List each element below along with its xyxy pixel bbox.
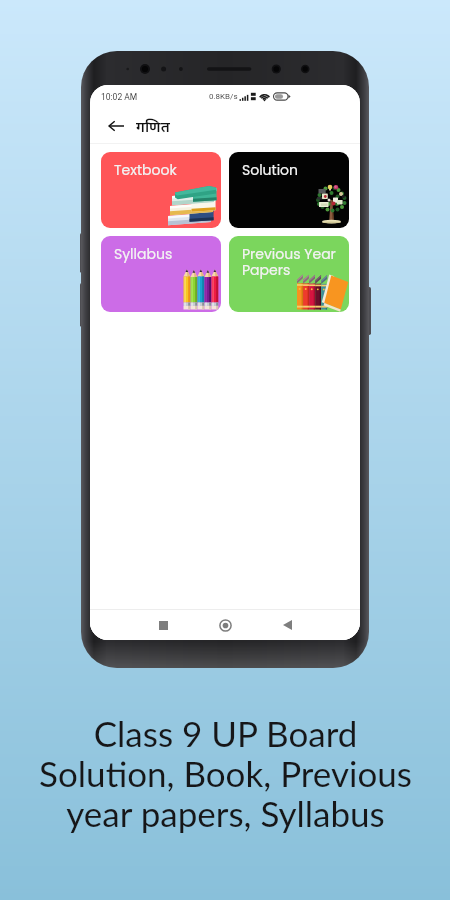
button[interactable]: Solution (229, 152, 349, 228)
button[interactable]: Syllabus (101, 236, 221, 312)
staticText: Solution (242, 160, 299, 180)
button[interactable]: Back (105, 115, 127, 137)
staticText: Class 9 UP Board Solution, Book, Previou… (39, 712, 412, 835)
staticText: 10:02 AM (101, 92, 138, 102)
button[interactable]: Previous Year Papers (229, 236, 349, 312)
staticText: Syllabus (114, 244, 173, 264)
staticText: Previous Year Papers (242, 244, 336, 280)
staticText: गणित (136, 116, 170, 136)
button[interactable]: Back (256, 610, 318, 640)
button[interactable]: Textbook (101, 152, 221, 228)
button[interactable]: Recent apps (132, 610, 194, 640)
staticText: 0.8KB/s (209, 92, 238, 101)
button[interactable]: Home (194, 610, 256, 640)
staticText: Textbook (114, 160, 177, 180)
